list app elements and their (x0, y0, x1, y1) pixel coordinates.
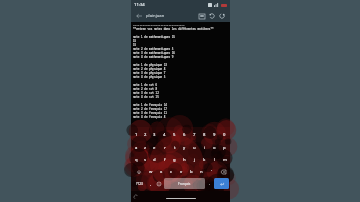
button[interactable]: ?123 (132, 178, 146, 189)
button[interactable]: Backspace (217, 166, 229, 177)
staticText: note 4 de français 8 (133, 115, 166, 119)
staticText: -------------------------------- (133, 23, 185, 27)
button[interactable]: 2 (141, 129, 149, 141)
button[interactable]: a (132, 142, 140, 153)
staticText: note 3 de français 11 (133, 111, 167, 115)
button[interactable]: Back (134, 11, 144, 21)
staticText: 6 (183, 132, 186, 138)
staticText: v (180, 169, 183, 175)
staticText: k (203, 157, 206, 163)
staticText: f (164, 157, 166, 163)
staticText: note 1 de svt 6 (133, 83, 158, 87)
button[interactable]: s (141, 154, 149, 165)
button[interactable]: i (200, 142, 209, 153)
staticText: i (204, 145, 206, 151)
button[interactable]: f (160, 154, 169, 165)
staticText: note 4 de svt 15 (133, 95, 159, 99)
button[interactable]: 3 (150, 129, 159, 141)
button[interactable]: 7 (190, 129, 199, 141)
staticText: p (223, 145, 226, 151)
button[interactable]: o (210, 142, 219, 153)
button[interactable]: k (200, 154, 209, 165)
staticText: b (190, 169, 193, 175)
button[interactable]: Français (164, 178, 205, 189)
button[interactable]: n (197, 166, 206, 177)
button[interactable]: w (146, 166, 156, 177)
button[interactable]: Redo (217, 11, 227, 21)
button[interactable]: l (210, 154, 219, 165)
button[interactable]: v (177, 166, 186, 177)
button[interactable]: x (157, 166, 166, 177)
staticText: l (214, 157, 216, 163)
button[interactable]: 6 (180, 129, 189, 141)
button[interactable]: u (190, 142, 199, 153)
staticText: note 2 de français 17 (133, 107, 167, 111)
staticText: 0 (223, 132, 226, 138)
staticText: ' (211, 169, 212, 175)
staticText: note 3 de mathematiques 16 (133, 51, 175, 55)
staticText: note 2 de mathematiques 5 (133, 47, 174, 51)
button[interactable]: 8 (200, 129, 209, 141)
button[interactable]: h (180, 154, 189, 165)
button[interactable]: 5 (170, 129, 179, 141)
staticText: 5 (173, 132, 176, 138)
button[interactable]: y (180, 142, 189, 153)
button[interactable]: b (187, 166, 196, 177)
staticText: note 1 de physique 13 (133, 63, 167, 67)
button[interactable]: Emoji (155, 178, 163, 189)
staticText: c (170, 169, 173, 175)
staticText: 9 (213, 132, 216, 138)
staticText: w (149, 169, 153, 175)
button[interactable]: t (170, 142, 179, 153)
staticText: ?123 (136, 182, 143, 186)
button[interactable]: p (220, 142, 229, 153)
staticText: y (183, 145, 186, 151)
button[interactable]: 1 (132, 129, 140, 141)
button[interactable]: e (150, 142, 159, 153)
button[interactable]: Keyboard (197, 11, 207, 21)
button[interactable]: 0 (220, 129, 229, 141)
button[interactable]: Shift (132, 166, 145, 177)
staticText: 4 (163, 132, 166, 138)
staticText: e (153, 145, 156, 151)
button[interactable]: Enter (214, 178, 229, 189)
staticText: j (194, 157, 196, 163)
staticText: note 4 de physique 5 (133, 75, 166, 79)
staticText: 11:34 (134, 2, 145, 8)
staticText: d (153, 157, 156, 163)
staticText: 2 (144, 132, 147, 138)
staticText: z (144, 145, 146, 151)
button[interactable]: c (167, 166, 176, 177)
button[interactable]: ' (207, 166, 216, 177)
staticText: 8 (203, 132, 206, 138)
button[interactable]: d (150, 154, 159, 165)
staticText: note 2 de physique 8 (133, 67, 166, 71)
button[interactable]: 4 (160, 129, 169, 141)
staticText: note 2 de svt 8 (133, 87, 158, 91)
button[interactable]: q (132, 154, 140, 165)
staticText: **entrer vos notes dans les différentes … (133, 27, 214, 31)
staticText: r (164, 145, 166, 151)
button[interactable]: m (220, 154, 229, 165)
button[interactable]: r (160, 142, 169, 153)
staticText: m (223, 157, 227, 163)
staticText: note 1 de mathematiques 15 (133, 35, 175, 39)
staticText: note 1 de français 14 (133, 103, 167, 107)
staticText: 15 (133, 43, 137, 47)
staticText: 3 (153, 132, 156, 138)
button[interactable]: 9 (210, 129, 219, 141)
staticText: plainjuan (146, 13, 165, 19)
button[interactable]: , (147, 178, 154, 189)
staticText: h (183, 157, 186, 163)
button[interactable]: z (141, 142, 149, 153)
staticText: t (174, 145, 176, 151)
button[interactable]: g (170, 154, 179, 165)
staticText: q (135, 157, 138, 163)
staticText: , (150, 181, 152, 187)
button[interactable]: . (206, 178, 213, 189)
button[interactable]: Undo (207, 11, 217, 21)
button[interactable]: j (190, 154, 199, 165)
staticText: u (193, 145, 196, 151)
staticText: note 3 de svt 12 (133, 91, 159, 95)
staticText: Français (178, 182, 191, 186)
